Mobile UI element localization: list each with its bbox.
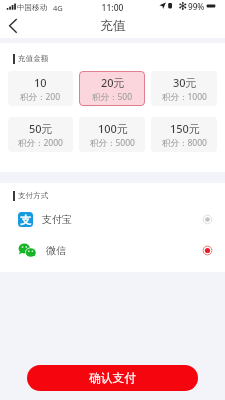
- button[interactable]: Back: [0, 14, 28, 38]
- staticText: 30元: [173, 75, 197, 90]
- staticText: 99%: [188, 1, 205, 12]
- button[interactable]: 微信: [0, 235, 225, 266]
- staticText: 10: [34, 75, 47, 90]
- staticText: 积分：8000: [162, 137, 207, 149]
- staticText: 支: [20, 213, 31, 227]
- staticText: 20元: [101, 75, 125, 90]
- button[interactable]: 确认支付: [27, 365, 198, 391]
- button[interactable]: 20元: [79, 71, 145, 106]
- staticText: 4G: [53, 3, 63, 13]
- staticText: 支付方式: [18, 191, 49, 201]
- staticText: 11:00: [0, 2, 225, 14]
- button[interactable]: 30元: [151, 71, 217, 106]
- staticText: 支付宝: [42, 213, 72, 226]
- staticText: 中国移动: [17, 3, 47, 12]
- button[interactable]: 100元: [79, 117, 145, 152]
- staticText: 积分：1000: [162, 91, 207, 103]
- button[interactable]: 支: [0, 204, 225, 235]
- staticText: 150元: [170, 121, 200, 136]
- staticText: 微信: [46, 244, 66, 257]
- staticText: 积分：5000: [90, 137, 135, 149]
- staticText: 确认支付: [89, 371, 137, 386]
- staticText: 100元: [98, 121, 128, 136]
- staticText: 积分：2000: [18, 137, 63, 149]
- button[interactable]: 10: [8, 71, 73, 106]
- staticText: 充值: [100, 18, 126, 34]
- staticText: 积分：500: [92, 91, 133, 103]
- staticText: 积分：200: [20, 91, 61, 103]
- staticText: 充值金额: [18, 54, 49, 64]
- staticText: 50元: [29, 121, 53, 136]
- button[interactable]: 50元: [8, 117, 73, 152]
- button[interactable]: 150元: [151, 117, 217, 152]
